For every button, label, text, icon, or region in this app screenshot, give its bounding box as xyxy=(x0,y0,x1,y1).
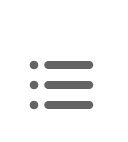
button[interactable]: List xyxy=(30,61,93,109)
